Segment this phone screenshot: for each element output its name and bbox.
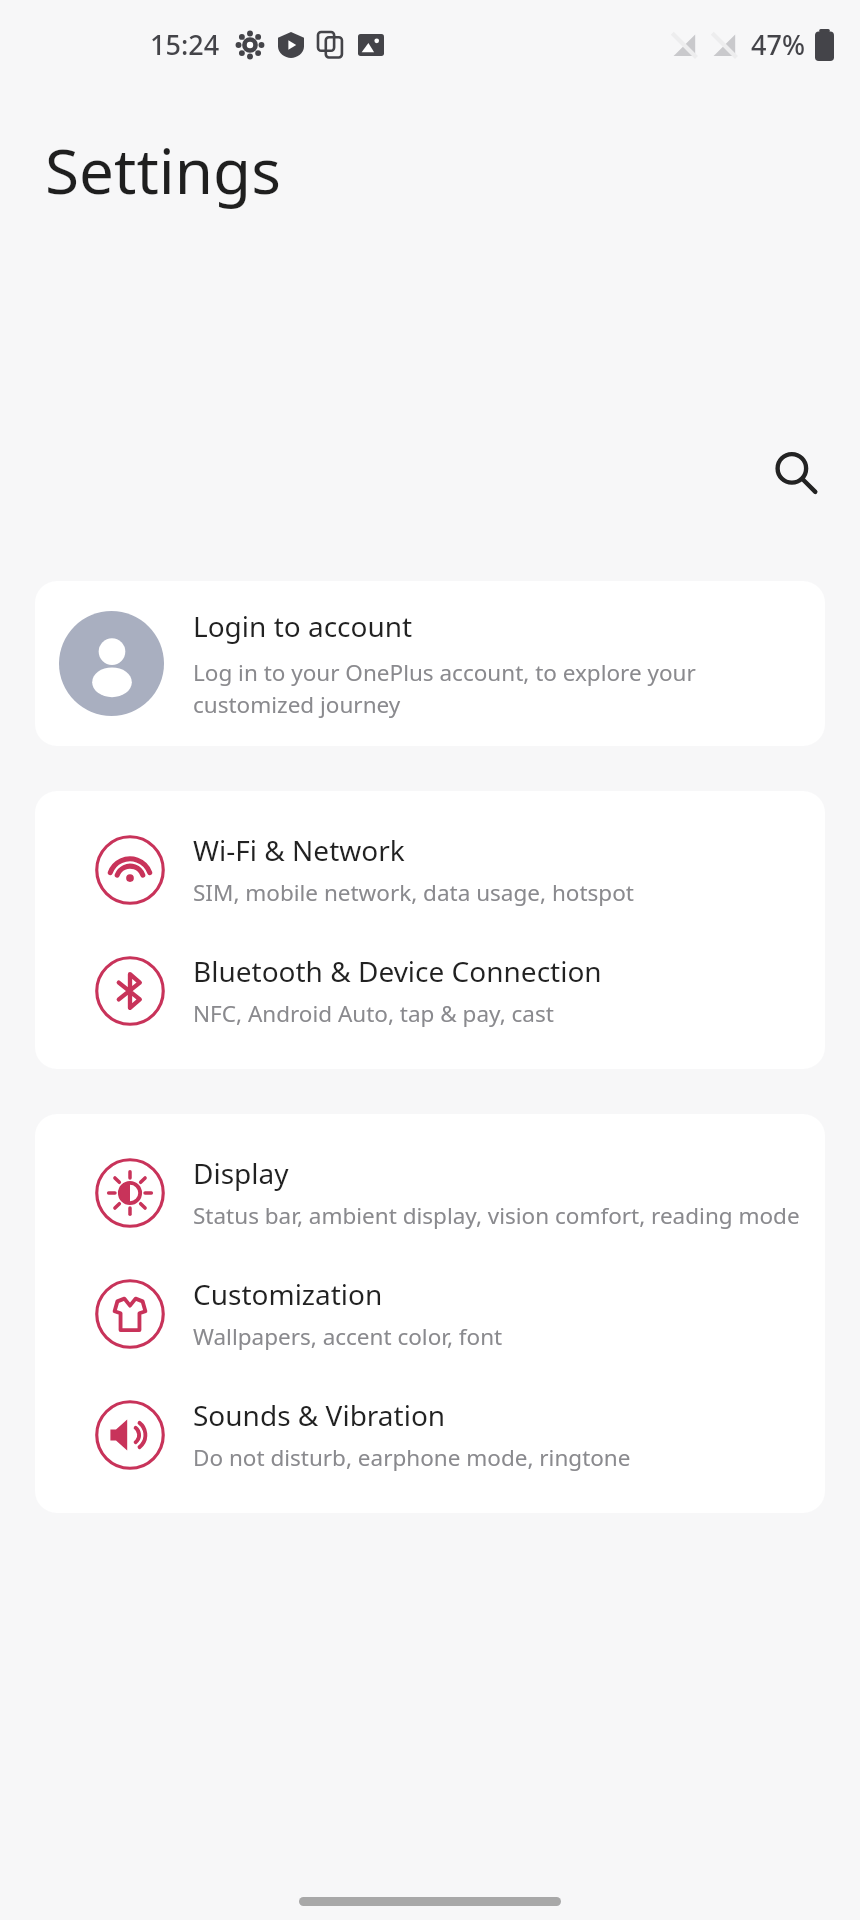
staticText: Login to account (193, 607, 413, 645)
staticText: Status bar, ambient display, vision comf… (193, 1200, 800, 1231)
staticText: Sounds & Vibration (193, 1396, 446, 1434)
button[interactable]: Login to account (35, 581, 825, 746)
staticText: NFC, Android Auto, tap & pay, cast (193, 998, 554, 1029)
button[interactable]: Wi-Fi & Network (35, 809, 825, 930)
button[interactable]: Customization (35, 1253, 825, 1374)
staticText: SIM, mobile network, data usage, hotspot (193, 877, 634, 908)
staticText: Bluetooth & Device Connection (193, 952, 602, 990)
staticText: 15:24 (150, 26, 220, 63)
staticText: Display (193, 1154, 289, 1192)
staticText: Do not disturb, earphone mode, ringtone (193, 1442, 631, 1473)
staticText: Log in to your OnePlus account, to explo… (193, 657, 801, 720)
staticText: Wallpapers, accent color, font (193, 1321, 503, 1352)
button[interactable]: Search settings (760, 437, 832, 509)
button[interactable]: Display (35, 1132, 825, 1253)
staticText: 47% (751, 26, 805, 63)
button[interactable]: Bluetooth & Device Connection (35, 930, 825, 1051)
button[interactable]: Sounds & Vibration (35, 1374, 825, 1495)
staticText: Settings (45, 128, 281, 212)
staticText: Wi-Fi & Network (193, 831, 405, 869)
staticText: Customization (193, 1275, 383, 1313)
